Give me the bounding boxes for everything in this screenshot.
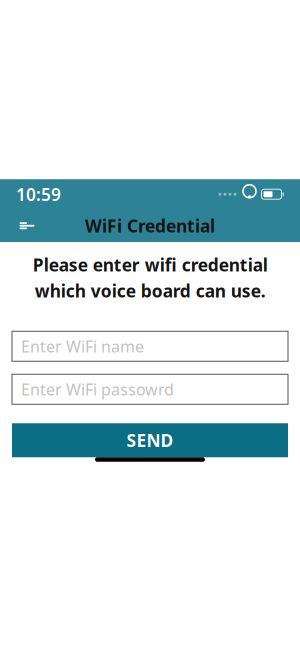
- staticText: SEND: [126, 429, 173, 452]
- staticText: Please enter wifi credential which voice…: [32, 253, 267, 302]
- staticText: 10:59: [16, 183, 61, 206]
- button[interactable]: Enter WiFi name: [12, 331, 288, 361]
- button[interactable]: Enter WiFi passowrd: [12, 374, 288, 404]
- button[interactable]: SEND: [12, 423, 288, 457]
- staticText: WiFi Credential: [85, 214, 215, 237]
- staticText: Enter WiFi passowrd: [21, 379, 174, 400]
- staticText: Enter WiFi name: [21, 336, 144, 357]
- button[interactable]: Back: [10, 209, 44, 242]
